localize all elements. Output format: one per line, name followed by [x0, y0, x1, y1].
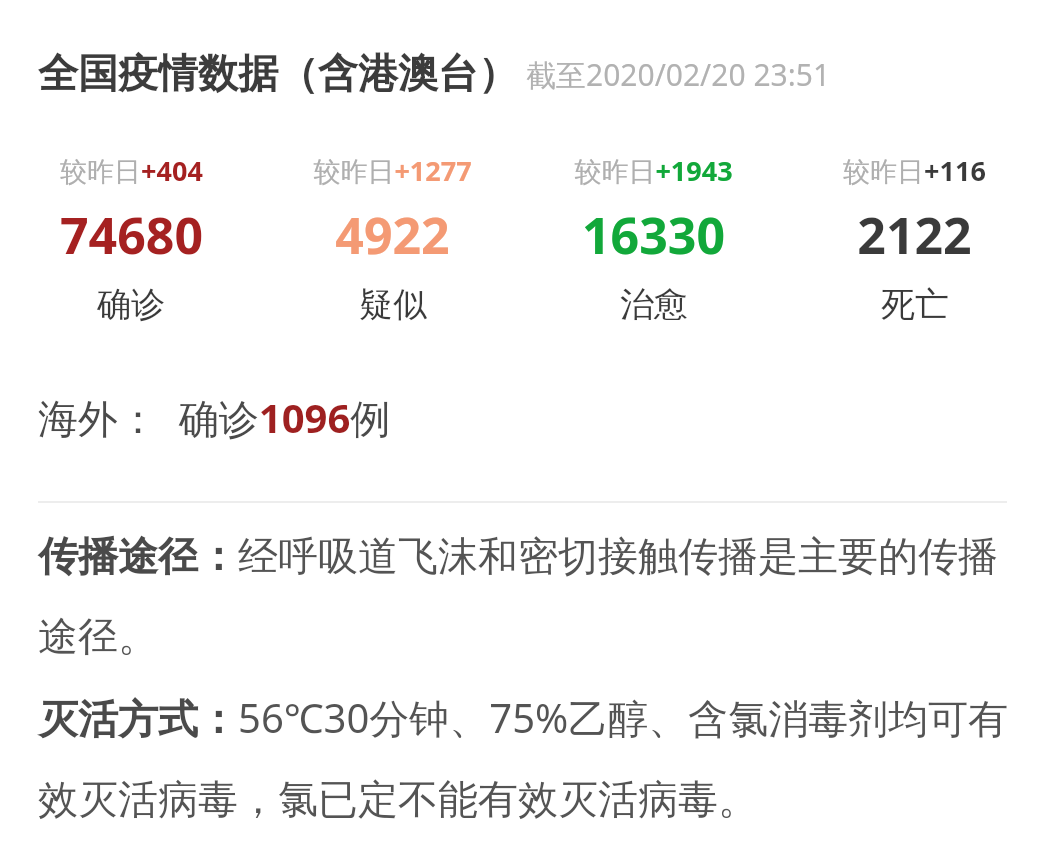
staticText: 确诊: [97, 283, 165, 326]
staticText: 4922: [335, 201, 450, 269]
staticText: 治愈: [620, 283, 688, 326]
button[interactable]: 海外： 确诊1096例: [0, 390, 1045, 445]
staticText: 截至2020/02/20 23:51: [526, 54, 831, 95]
staticText: 较昨日+1943: [574, 152, 733, 189]
button[interactable]: 较昨日+1943: [523, 150, 784, 328]
button[interactable]: 较昨日+404: [0, 150, 262, 328]
staticText: 海外： 确诊1096例: [38, 390, 391, 445]
staticText: 16330: [582, 201, 725, 269]
button[interactable]: 较昨日+116: [784, 150, 1045, 328]
staticText: 较昨日+404: [60, 152, 203, 189]
staticText: 较昨日+116: [843, 152, 986, 189]
staticText: 疑似: [359, 283, 427, 326]
staticText: 2122: [857, 201, 972, 269]
staticText: 全国疫情数据（含港澳台）: [38, 48, 518, 98]
staticText: 较昨日+1277: [313, 152, 472, 189]
staticText: 74680: [60, 201, 203, 269]
staticText: 死亡: [881, 283, 949, 326]
button[interactable]: 较昨日+1277: [262, 150, 523, 328]
staticText: 传播途径：经呼吸道飞沫和密切接触传播是主要的传播途径。 灭活方式：56℃30分钟…: [38, 531, 1015, 825]
